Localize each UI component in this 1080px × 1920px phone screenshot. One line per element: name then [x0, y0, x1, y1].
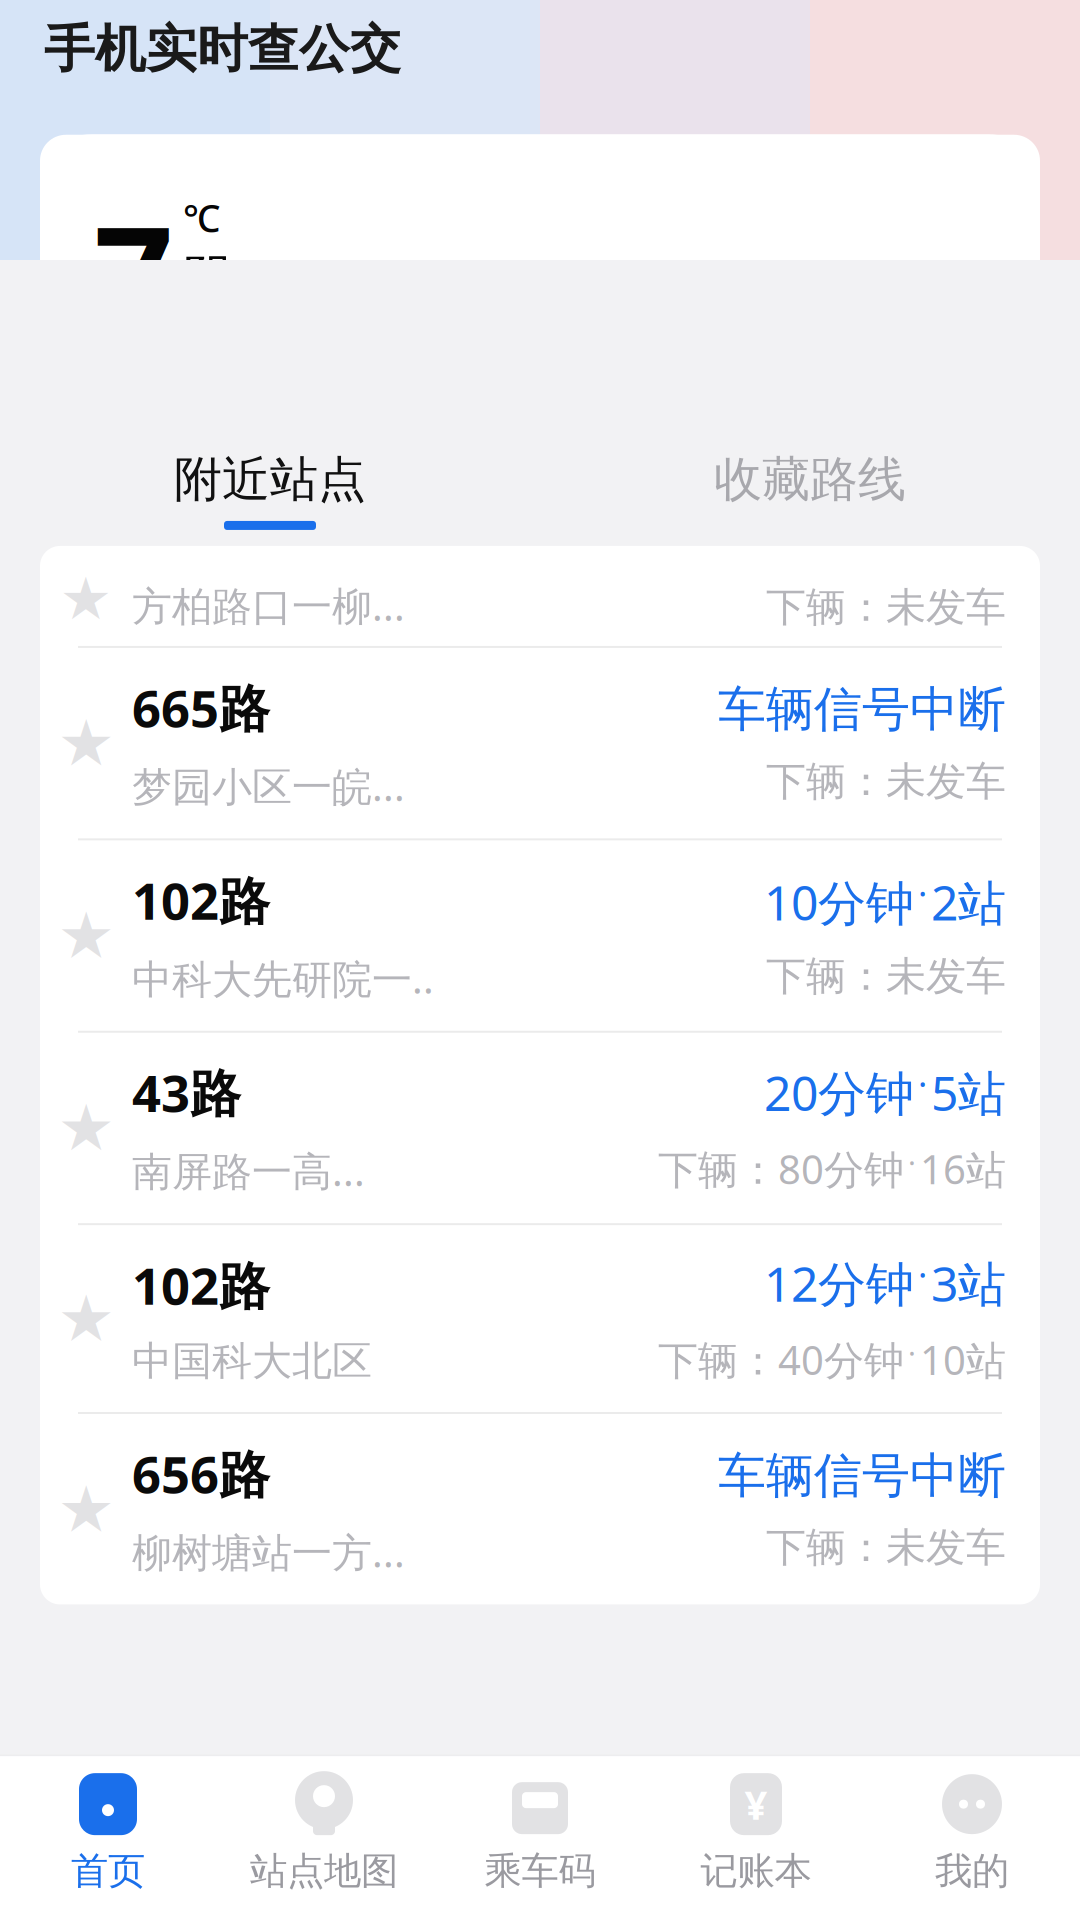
staticText: 656路 — [132, 1440, 270, 1507]
staticText: 空气质量 — [805, 464, 945, 507]
staticText: · — [908, 1333, 916, 1372]
staticText: 3站 — [931, 1251, 1006, 1315]
staticText: 20分钟 — [764, 1060, 914, 1124]
staticText: 16站 — [920, 1142, 1006, 1195]
staticText: · — [908, 1142, 916, 1181]
button[interactable]: 附近站点 — [0, 450, 540, 530]
button[interactable]: ★ — [40, 1414, 1040, 1604]
button[interactable]: ★ — [40, 1225, 1040, 1412]
staticText: 梦园小区一皖... — [132, 759, 405, 812]
staticText: 乘车码 — [484, 1848, 595, 1894]
button[interactable]: 收藏路线 — [540, 450, 1080, 530]
staticText: ℃ — [183, 193, 220, 242]
staticText: 7 — [94, 181, 173, 365]
staticText: 合肥市 — [78, 157, 201, 207]
staticText: 风力 — [170, 467, 240, 509]
staticText: 柳树塘站一方... — [132, 1525, 405, 1578]
staticText: ★ — [59, 565, 112, 632]
staticText: 下辆：未发车 — [766, 952, 1006, 1001]
staticText: 记账本 — [700, 1848, 811, 1894]
button[interactable]: ★ — [40, 1033, 1040, 1223]
staticText: · — [918, 1251, 927, 1297]
staticText: 首页 — [71, 1848, 145, 1894]
staticText: 102路 — [132, 866, 270, 934]
staticText: 手机实时查公交 — [44, 18, 401, 80]
staticText: · — [918, 870, 927, 916]
staticText: 下辆：40分钟 — [658, 1333, 904, 1386]
staticText: 5站 — [931, 1060, 1006, 1124]
button[interactable]: 合肥市 — [44, 134, 1036, 230]
staticText: ★ — [57, 899, 114, 972]
staticText: 下辆：80分钟 — [658, 1142, 904, 1195]
button[interactable]: ★ — [40, 648, 1040, 838]
staticText: 下辆：未发车 — [766, 757, 1006, 806]
staticText: 收藏路线 — [714, 450, 906, 509]
staticText: 下辆：未发车 — [766, 1523, 1006, 1572]
staticText: 中科大先研院一.. — [132, 952, 434, 1005]
button[interactable]: 我的 — [864, 1772, 1080, 1894]
staticText: 附近站点 — [174, 450, 366, 509]
staticText: · — [918, 1060, 927, 1106]
staticText: ★ — [57, 707, 114, 779]
staticText: 中国科大北区 — [132, 1337, 372, 1386]
staticText: 车辆信号中断 — [718, 680, 1006, 739]
staticText: ★ — [57, 1092, 114, 1164]
button[interactable]: 乘车码 — [432, 1772, 648, 1894]
staticText: ★ — [57, 1282, 114, 1355]
button[interactable]: 首页 — [0, 1772, 216, 1894]
staticText: ★ — [57, 1473, 114, 1545]
button[interactable]: ★ — [40, 840, 1040, 1031]
button[interactable]: ★ — [40, 546, 1040, 646]
staticText: 车辆信号中断 — [718, 1446, 1006, 1505]
staticText: 43路 — [132, 1059, 241, 1126]
staticText: 10分钟 — [764, 870, 914, 934]
staticText: 2站 — [931, 870, 1006, 934]
button[interactable]: ¥ — [648, 1772, 864, 1894]
staticText: 12分钟 — [764, 1251, 914, 1315]
staticText: 阴 — [183, 248, 231, 307]
staticText: 665路 — [132, 674, 270, 741]
staticText: 我的 — [935, 1848, 1009, 1894]
staticText: 10站 — [920, 1333, 1006, 1386]
staticText: 方柏路口一柳... — [132, 579, 405, 632]
button[interactable]: 站点地图 — [216, 1772, 432, 1894]
staticText: 南屏路一高... — [132, 1144, 365, 1197]
staticText: ¥ — [744, 1778, 767, 1831]
staticText: 102路 — [132, 1251, 270, 1319]
staticText: 站点地图 — [250, 1848, 398, 1894]
staticText: 下辆：未发车 — [766, 583, 1006, 632]
